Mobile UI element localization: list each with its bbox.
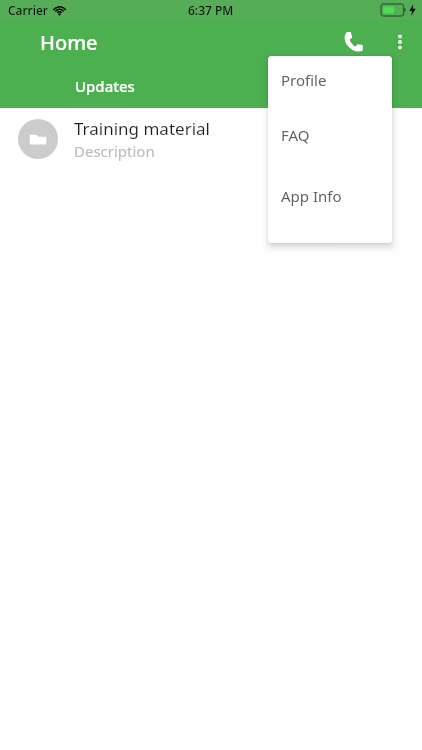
staticText: Updates [75,76,135,96]
staticText: Training material [74,117,210,140]
button[interactable]: FAQ [268,104,392,165]
button[interactable]: Profile [268,56,392,104]
button[interactable]: More options [378,20,422,64]
staticText: Home [40,29,98,56]
staticText: 6:37 PM [188,2,234,18]
button[interactable]: Call [330,20,378,64]
button[interactable]: App Info [268,165,392,226]
button[interactable]: Training material [0,108,422,170]
button[interactable]: Updates [0,64,210,108]
staticText: Description [74,141,155,161]
staticText: Profile [281,70,327,90]
staticText: FAQ [281,125,310,145]
staticText: App Info [281,186,342,206]
staticText: Carrier [8,2,48,18]
